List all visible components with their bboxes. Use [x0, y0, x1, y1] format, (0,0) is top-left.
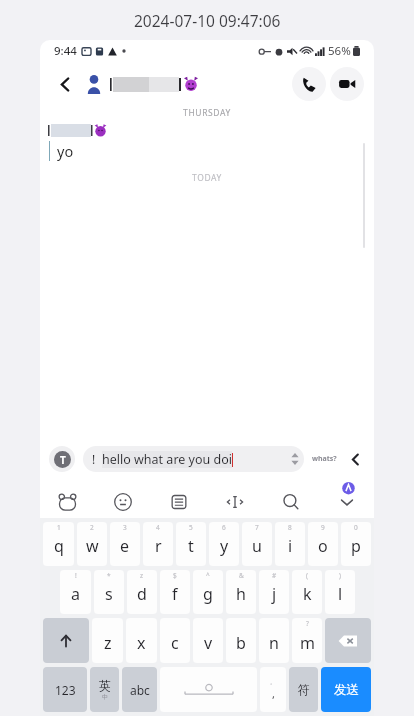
staticText: !	[92, 451, 96, 467]
staticText: n	[269, 632, 279, 654]
staticText: abc	[130, 682, 150, 698]
staticText: 。	[270, 678, 276, 686]
button[interactable]	[110, 76, 292, 92]
button[interactable]: 5	[176, 522, 206, 566]
button[interactable]: Voice call	[292, 67, 326, 101]
button[interactable]: !	[60, 570, 91, 614]
staticText: )	[339, 571, 341, 580]
button[interactable]: v	[193, 618, 223, 663]
staticText: t	[188, 535, 194, 557]
button[interactable]: (	[292, 570, 322, 614]
button[interactable]: x	[126, 618, 157, 663]
staticText: 9:44	[54, 43, 77, 59]
button[interactable]: !	[83, 446, 304, 472]
button[interactable]: 123	[43, 667, 87, 712]
button[interactable]: abc	[122, 667, 157, 712]
staticText: p	[351, 535, 361, 557]
staticText: 5	[189, 523, 193, 532]
button[interactable]: 2	[77, 522, 107, 566]
button[interactable]: )	[325, 570, 355, 614]
staticText: ,	[272, 686, 275, 701]
staticText: whats?	[312, 454, 337, 464]
staticText: i	[288, 535, 293, 557]
staticText: o	[318, 535, 328, 557]
staticText: 8	[288, 523, 292, 532]
staticText: l	[338, 583, 343, 605]
button[interactable]: Clipboard	[166, 489, 192, 515]
button[interactable]: *	[94, 570, 124, 614]
button[interactable]: 英	[90, 667, 119, 712]
button[interactable]: Move cursor	[222, 489, 248, 515]
staticText: d	[137, 583, 147, 605]
button[interactable]: Search	[278, 489, 304, 515]
button[interactable]: #	[259, 570, 289, 614]
button[interactable]: 9	[308, 522, 338, 566]
button[interactable]: 3	[110, 522, 140, 566]
button[interactable]: Emoji	[110, 489, 136, 515]
button[interactable]: z	[127, 570, 157, 614]
button[interactable]: 1	[43, 522, 74, 566]
staticText: 123	[55, 682, 76, 698]
button[interactable]: Space	[160, 667, 257, 712]
staticText: z	[104, 632, 112, 654]
staticText: m	[300, 632, 315, 654]
staticText: THURSDAY	[183, 107, 231, 119]
staticText: 符	[298, 682, 310, 697]
staticText: z	[140, 571, 144, 580]
button[interactable]: 6	[209, 522, 239, 566]
staticText: 0	[354, 523, 358, 532]
staticText: s	[105, 583, 113, 605]
button[interactable]: More	[345, 449, 365, 469]
staticText: c	[171, 632, 179, 654]
button[interactable]: 发送	[321, 667, 371, 712]
staticText: 7	[255, 523, 259, 532]
staticText: yo	[57, 141, 74, 161]
staticText: r	[155, 535, 162, 557]
button[interactable]: 符	[289, 667, 318, 712]
staticText: f	[172, 583, 178, 605]
button[interactable]: 4	[143, 522, 173, 566]
button[interactable]: Delete	[325, 618, 371, 663]
staticText: ?	[306, 619, 309, 628]
staticText: g	[203, 583, 213, 605]
staticText: b	[236, 632, 246, 654]
staticText: &	[239, 571, 244, 580]
button[interactable]: Shift	[43, 618, 89, 663]
button[interactable]: 8	[275, 522, 305, 566]
staticText: 6	[222, 523, 226, 532]
staticText: ^	[206, 571, 210, 580]
staticText: 英	[99, 678, 111, 693]
button[interactable]: z	[92, 618, 123, 663]
staticText: w	[86, 535, 99, 557]
staticText: TODAY	[192, 172, 222, 184]
button[interactable]: Hide keyboard	[334, 489, 360, 515]
button[interactable]: Text style	[49, 446, 75, 472]
staticText: 发送	[334, 682, 359, 698]
button[interactable]: ?	[292, 618, 322, 663]
staticText: hello what are you doi	[102, 451, 232, 468]
button[interactable]: ^	[193, 570, 223, 614]
staticText: j	[272, 583, 277, 605]
button[interactable]: b	[226, 618, 256, 663]
staticText: 2	[90, 523, 94, 532]
staticText: !	[75, 571, 77, 580]
staticText: y	[220, 535, 229, 557]
staticText: 3	[123, 523, 127, 532]
staticText: e	[120, 535, 130, 557]
button[interactable]: Video call	[330, 67, 364, 101]
button[interactable]: c	[160, 618, 190, 663]
button[interactable]: Back	[50, 69, 80, 99]
staticText: 2024-07-10 09:47:06	[134, 10, 281, 31]
staticText: (	[306, 571, 308, 580]
staticText: 中	[102, 693, 108, 701]
staticText: x	[137, 632, 146, 654]
button[interactable]: 0	[341, 522, 371, 566]
button[interactable]: &	[226, 570, 256, 614]
button[interactable]: Baidu input	[54, 489, 80, 515]
button[interactable]: 7	[242, 522, 272, 566]
button[interactable]: 。	[260, 667, 286, 712]
staticText: T	[60, 453, 66, 467]
button[interactable]: n	[259, 618, 289, 663]
staticText: a	[71, 583, 80, 605]
button[interactable]: $	[160, 570, 190, 614]
